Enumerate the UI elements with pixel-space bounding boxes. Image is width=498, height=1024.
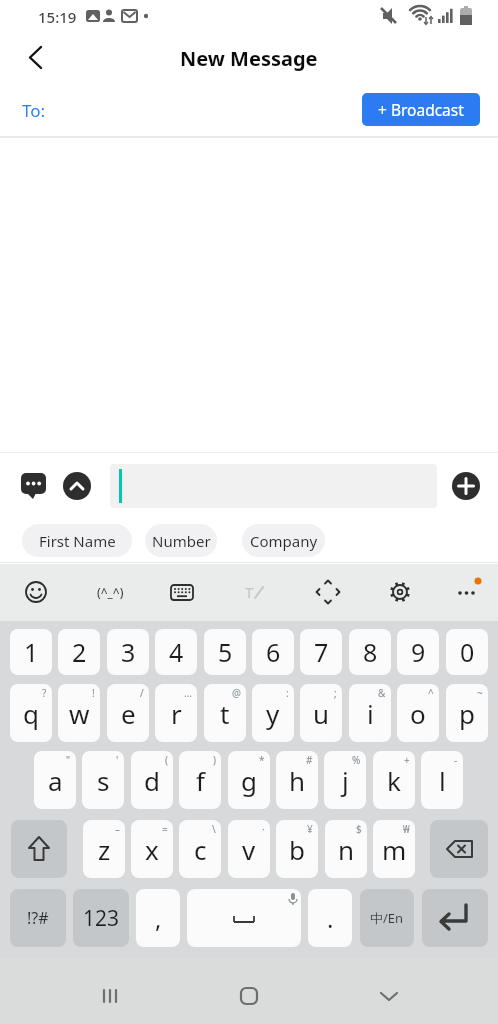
button[interactable]: y <box>252 684 294 742</box>
staticText: ) <box>213 753 216 767</box>
button[interactable]: T <box>241 578 269 606</box>
button[interactable] <box>386 578 414 606</box>
button[interactable]: g <box>228 751 270 809</box>
staticText: @ <box>232 686 241 700</box>
button[interactable]: First Name <box>22 524 132 557</box>
staticText: Number <box>152 531 211 551</box>
button[interactable]: 2 <box>58 629 100 675</box>
staticText: To: <box>22 99 46 122</box>
button[interactable] <box>11 820 67 878</box>
button[interactable]: a <box>34 751 76 809</box>
button[interactable]: z <box>83 820 125 878</box>
staticText: r <box>171 696 182 731</box>
button[interactable] <box>187 889 301 947</box>
button[interactable]: 0 <box>446 629 488 675</box>
staticText: 中/En <box>370 909 404 927</box>
button[interactable]: b <box>276 820 318 878</box>
button[interactable]: p <box>446 684 488 742</box>
staticText: t <box>220 696 230 731</box>
staticText: c <box>194 832 207 867</box>
button[interactable]: l <box>421 751 463 809</box>
button[interactable]: (^_^) <box>88 578 132 606</box>
staticText: w <box>69 696 90 731</box>
staticText: a <box>48 763 63 798</box>
staticText: T <box>245 582 254 602</box>
button[interactable] <box>422 889 488 947</box>
button[interactable]: j <box>324 751 366 809</box>
button[interactable] <box>110 464 437 508</box>
staticText: p <box>459 696 475 731</box>
button[interactable] <box>20 471 48 501</box>
button[interactable] <box>367 974 411 1018</box>
button[interactable]: 3 <box>107 629 149 675</box>
button[interactable]: 9 <box>397 629 439 675</box>
button[interactable]: r <box>155 684 197 742</box>
button[interactable]: 123 <box>73 889 129 947</box>
button[interactable]: 5 <box>204 629 246 675</box>
button[interactable]: 4 <box>155 629 197 675</box>
staticText: k <box>387 763 401 798</box>
button[interactable]: i <box>349 684 391 742</box>
button[interactable]: 中/En <box>360 889 414 947</box>
button[interactable]: Company <box>242 524 325 557</box>
staticText: l <box>439 763 446 798</box>
staticText: 1 <box>24 635 39 669</box>
staticText: 7 <box>314 635 329 669</box>
button[interactable]: 6 <box>252 629 294 675</box>
staticText: u <box>313 696 330 731</box>
staticText: \ <box>212 822 216 836</box>
button[interactable]: v <box>228 820 270 878</box>
staticText: z <box>98 832 111 867</box>
button[interactable]: k <box>373 751 415 809</box>
button[interactable]: d <box>131 751 173 809</box>
staticText: 0 <box>460 635 475 669</box>
button[interactable]: m <box>373 820 415 878</box>
button[interactable]: q <box>10 684 52 742</box>
button[interactable]: 7 <box>300 629 342 675</box>
staticText: 6 <box>266 635 281 669</box>
button[interactable]: !?# <box>10 889 66 947</box>
staticText: x <box>145 832 159 867</box>
staticText: , <box>155 902 162 935</box>
button[interactable]: f <box>179 751 221 809</box>
button[interactable]: o <box>397 684 439 742</box>
button[interactable]: e <box>107 684 149 742</box>
button[interactable]: c <box>179 820 221 878</box>
staticText: s <box>97 763 110 798</box>
button[interactable] <box>227 974 271 1018</box>
button[interactable]: n <box>325 820 367 878</box>
button[interactable]: t <box>204 684 246 742</box>
staticText: 123 <box>83 904 120 933</box>
button[interactable] <box>88 974 132 1018</box>
button[interactable]: 1 <box>10 629 52 675</box>
button[interactable] <box>430 820 488 878</box>
staticText: = <box>162 822 168 836</box>
button[interactable]: . <box>308 889 352 947</box>
staticText: d <box>144 763 160 798</box>
button[interactable]: + Broadcast <box>362 93 480 126</box>
button[interactable] <box>63 472 91 500</box>
button[interactable]: , <box>136 889 180 947</box>
staticText: f <box>196 763 205 798</box>
button[interactable]: x <box>131 820 173 878</box>
staticText: i <box>367 696 374 731</box>
button[interactable]: u <box>300 684 342 742</box>
staticText: b <box>289 832 305 867</box>
staticText: ! <box>92 686 95 700</box>
staticText: j <box>342 763 349 798</box>
staticText: ; <box>334 686 337 700</box>
staticText: 15:19 <box>38 7 77 27</box>
button[interactable]: s <box>82 751 124 809</box>
button[interactable] <box>168 578 196 606</box>
button[interactable] <box>314 578 342 606</box>
button[interactable]: Number <box>145 524 217 557</box>
button[interactable] <box>22 578 50 606</box>
button[interactable] <box>452 472 480 500</box>
staticText: h <box>289 763 306 798</box>
button[interactable] <box>14 36 58 80</box>
button[interactable]: h <box>276 751 318 809</box>
button[interactable] <box>453 578 483 606</box>
button[interactable]: 8 <box>349 629 391 675</box>
staticText: 2 <box>72 635 87 669</box>
button[interactable]: w <box>58 684 100 742</box>
